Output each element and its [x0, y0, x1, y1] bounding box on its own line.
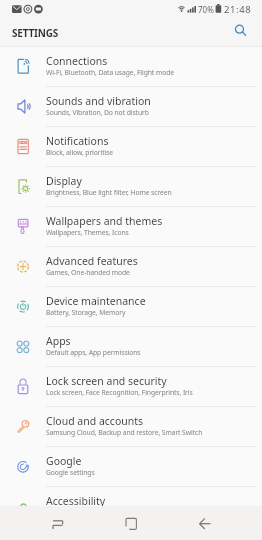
- button[interactable]: Notifications: [0, 127, 262, 167]
- staticText: Lock screen, Face Recognition, Fingerpri…: [46, 388, 193, 397]
- button[interactable]: Google: [0, 447, 262, 487]
- button[interactable]: Display: [0, 167, 262, 207]
- staticText: Lock screen and security: [46, 374, 167, 388]
- staticText: Wi-Fi, Bluetooth, Data usage, Flight mod…: [46, 68, 174, 77]
- button[interactable]: Lock screen and security: [0, 367, 262, 407]
- staticText: Advanced features: [46, 254, 138, 268]
- button[interactable]: Apps: [0, 327, 262, 367]
- button[interactable]: Cloud and accounts: [0, 407, 262, 447]
- staticText: Device maintenance: [46, 294, 146, 308]
- staticText: Sounds, Vibration, Do not disturb: [46, 108, 149, 117]
- staticText: Battery, Storage, Memory: [46, 308, 126, 317]
- staticText: Apps: [46, 334, 71, 348]
- staticText: Cloud and accounts: [46, 414, 144, 428]
- staticText: Google settings: [46, 468, 95, 477]
- staticText: 21:48: [224, 3, 252, 16]
- button[interactable]: Device maintenance: [0, 287, 262, 327]
- button[interactable]: Sounds and vibration: [0, 87, 262, 127]
- button[interactable]: [229, 19, 250, 40]
- staticText: Wallpapers and themes: [46, 214, 163, 228]
- staticText: Samsung Cloud, Backup and restore, Smart…: [46, 428, 203, 437]
- staticText: Default apps, App permissions: [46, 348, 141, 357]
- staticText: Wallpapers, Themes, Icons: [46, 228, 129, 237]
- button[interactable]: Connections: [0, 47, 262, 87]
- staticText: 70%: [198, 4, 214, 15]
- button[interactable]: [20, 506, 96, 540]
- staticText: Display: [46, 174, 82, 188]
- button[interactable]: [166, 506, 242, 540]
- button[interactable]: Advanced features: [0, 247, 262, 287]
- button[interactable]: Wallpapers and themes: [0, 207, 262, 247]
- staticText: Block, allow, prioritise: [46, 148, 114, 157]
- staticText: Games, One-handed mode: [46, 268, 130, 277]
- staticText: Brightness, Blue light filter, Home scre…: [46, 188, 172, 197]
- staticText: Notifications: [46, 134, 109, 148]
- button[interactable]: Accessibility: [0, 487, 262, 527]
- staticText: Sounds and vibration: [46, 94, 151, 108]
- button[interactable]: [96, 506, 166, 540]
- staticText: SETTINGS: [12, 26, 59, 40]
- staticText: Connections: [46, 54, 108, 68]
- staticText: Accessibility: [46, 494, 106, 508]
- staticText: Google: [46, 454, 82, 468]
